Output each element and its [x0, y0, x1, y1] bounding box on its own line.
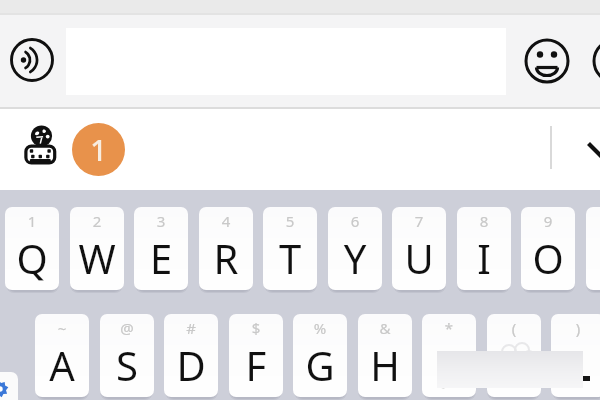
staticText: 1	[5, 211, 59, 231]
button[interactable]: 9	[521, 207, 575, 290]
button[interactable]: @	[100, 314, 154, 397]
staticText: *	[422, 318, 476, 338]
button[interactable]: Expand	[578, 131, 600, 175]
staticText: S	[100, 338, 154, 392]
staticText: Q	[5, 231, 59, 285]
staticText: D	[164, 338, 218, 392]
staticText: A	[35, 338, 89, 392]
staticText: W	[70, 231, 124, 285]
button[interactable]: 3	[134, 207, 188, 290]
button[interactable]: Settings	[0, 372, 18, 400]
button[interactable]: 0	[586, 207, 600, 290]
staticText: %	[293, 318, 347, 338]
staticText: L	[551, 338, 600, 392]
button[interactable]: More	[592, 38, 600, 84]
button[interactable]: 2	[70, 207, 124, 290]
staticText: 2	[70, 211, 124, 231]
button[interactable]: 8	[457, 207, 511, 290]
staticText: H	[358, 338, 412, 392]
staticText: K	[487, 338, 541, 392]
staticText: 8	[457, 211, 511, 231]
button[interactable]: 5	[263, 207, 317, 290]
staticText: J	[422, 338, 476, 392]
staticText: 6	[328, 211, 382, 231]
staticText: R	[199, 231, 253, 285]
staticText: &	[358, 318, 412, 338]
button[interactable]: Emoji	[524, 38, 570, 84]
staticText: Y	[328, 231, 382, 285]
staticText: I	[457, 231, 511, 285]
staticText: G	[293, 338, 347, 392]
button[interactable]: #	[164, 314, 218, 397]
staticText: 5	[263, 211, 317, 231]
staticText: #	[164, 318, 218, 338]
staticText: $	[229, 318, 283, 338]
staticText: ~	[35, 318, 89, 338]
button[interactable]: *	[422, 314, 476, 397]
button[interactable]: 6	[328, 207, 382, 290]
button[interactable]: %	[293, 314, 347, 397]
staticText: @	[100, 318, 154, 338]
staticText: 9	[521, 211, 575, 231]
button[interactable]: 1	[5, 207, 59, 290]
staticText: E	[134, 231, 188, 285]
button[interactable]: &	[358, 314, 412, 397]
staticText: )	[551, 318, 600, 338]
button[interactable]: (	[487, 314, 541, 397]
button[interactable]: 4	[199, 207, 253, 290]
staticText: 7	[392, 211, 446, 231]
button[interactable]: ~	[35, 314, 89, 397]
button[interactable]: )	[551, 314, 600, 397]
button[interactable]: 7	[392, 207, 446, 290]
staticText: 4	[199, 211, 253, 231]
staticText: U	[392, 231, 446, 285]
staticText: O	[521, 231, 575, 285]
button[interactable]: $	[229, 314, 283, 397]
button[interactable]: Voice input	[8, 36, 56, 84]
staticText: F	[229, 338, 283, 392]
staticText: (	[487, 318, 541, 338]
button[interactable]: Change keyboard language	[18, 121, 66, 169]
staticText: 1	[90, 130, 107, 169]
button[interactable]: 1	[72, 123, 125, 176]
staticText: 3	[134, 211, 188, 231]
staticText: T	[263, 231, 317, 285]
